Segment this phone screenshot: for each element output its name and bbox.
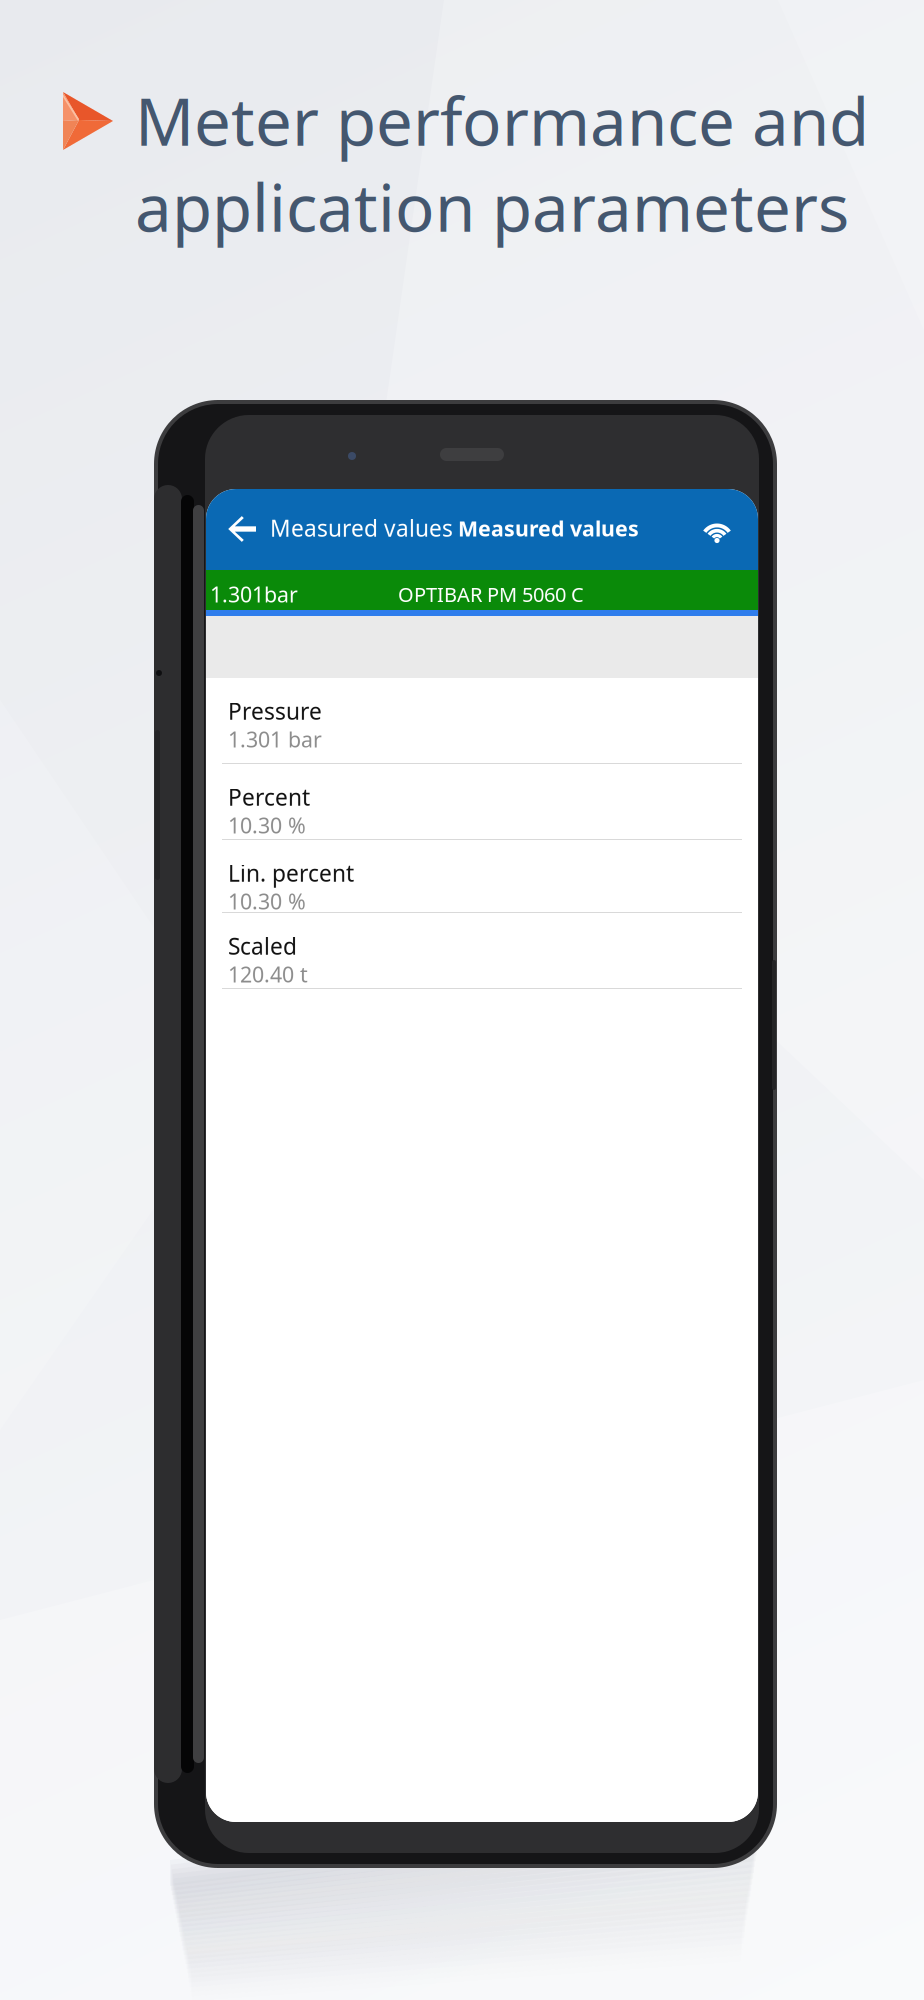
staticText: 1.301 bar — [228, 725, 322, 753]
button[interactable]: Scaled — [206, 913, 758, 989]
staticText: 10.30 % — [228, 811, 306, 839]
button[interactable]: Percent — [206, 764, 758, 840]
staticText: Pressure — [228, 696, 322, 726]
button[interactable]: Pressure — [206, 678, 758, 764]
button[interactable]: Lin. percent — [206, 840, 758, 913]
staticText: 10.30 % — [228, 887, 306, 915]
staticText: Percent — [228, 782, 310, 812]
button[interactable]: Back — [220, 507, 264, 551]
staticText: Measured values — [270, 513, 453, 543]
staticText: 120.40 t — [228, 960, 308, 988]
button[interactable]: Wi-Fi status — [695, 508, 739, 552]
staticText: application parameters — [135, 163, 849, 250]
staticText: Measured values — [458, 514, 639, 542]
staticText: 1.301bar — [210, 580, 298, 608]
staticText: OPTIBAR PM 5060 C — [398, 581, 584, 608]
staticText: Lin. percent — [228, 858, 354, 888]
staticText: Scaled — [228, 931, 297, 961]
staticText: Meter performance and — [135, 77, 869, 164]
